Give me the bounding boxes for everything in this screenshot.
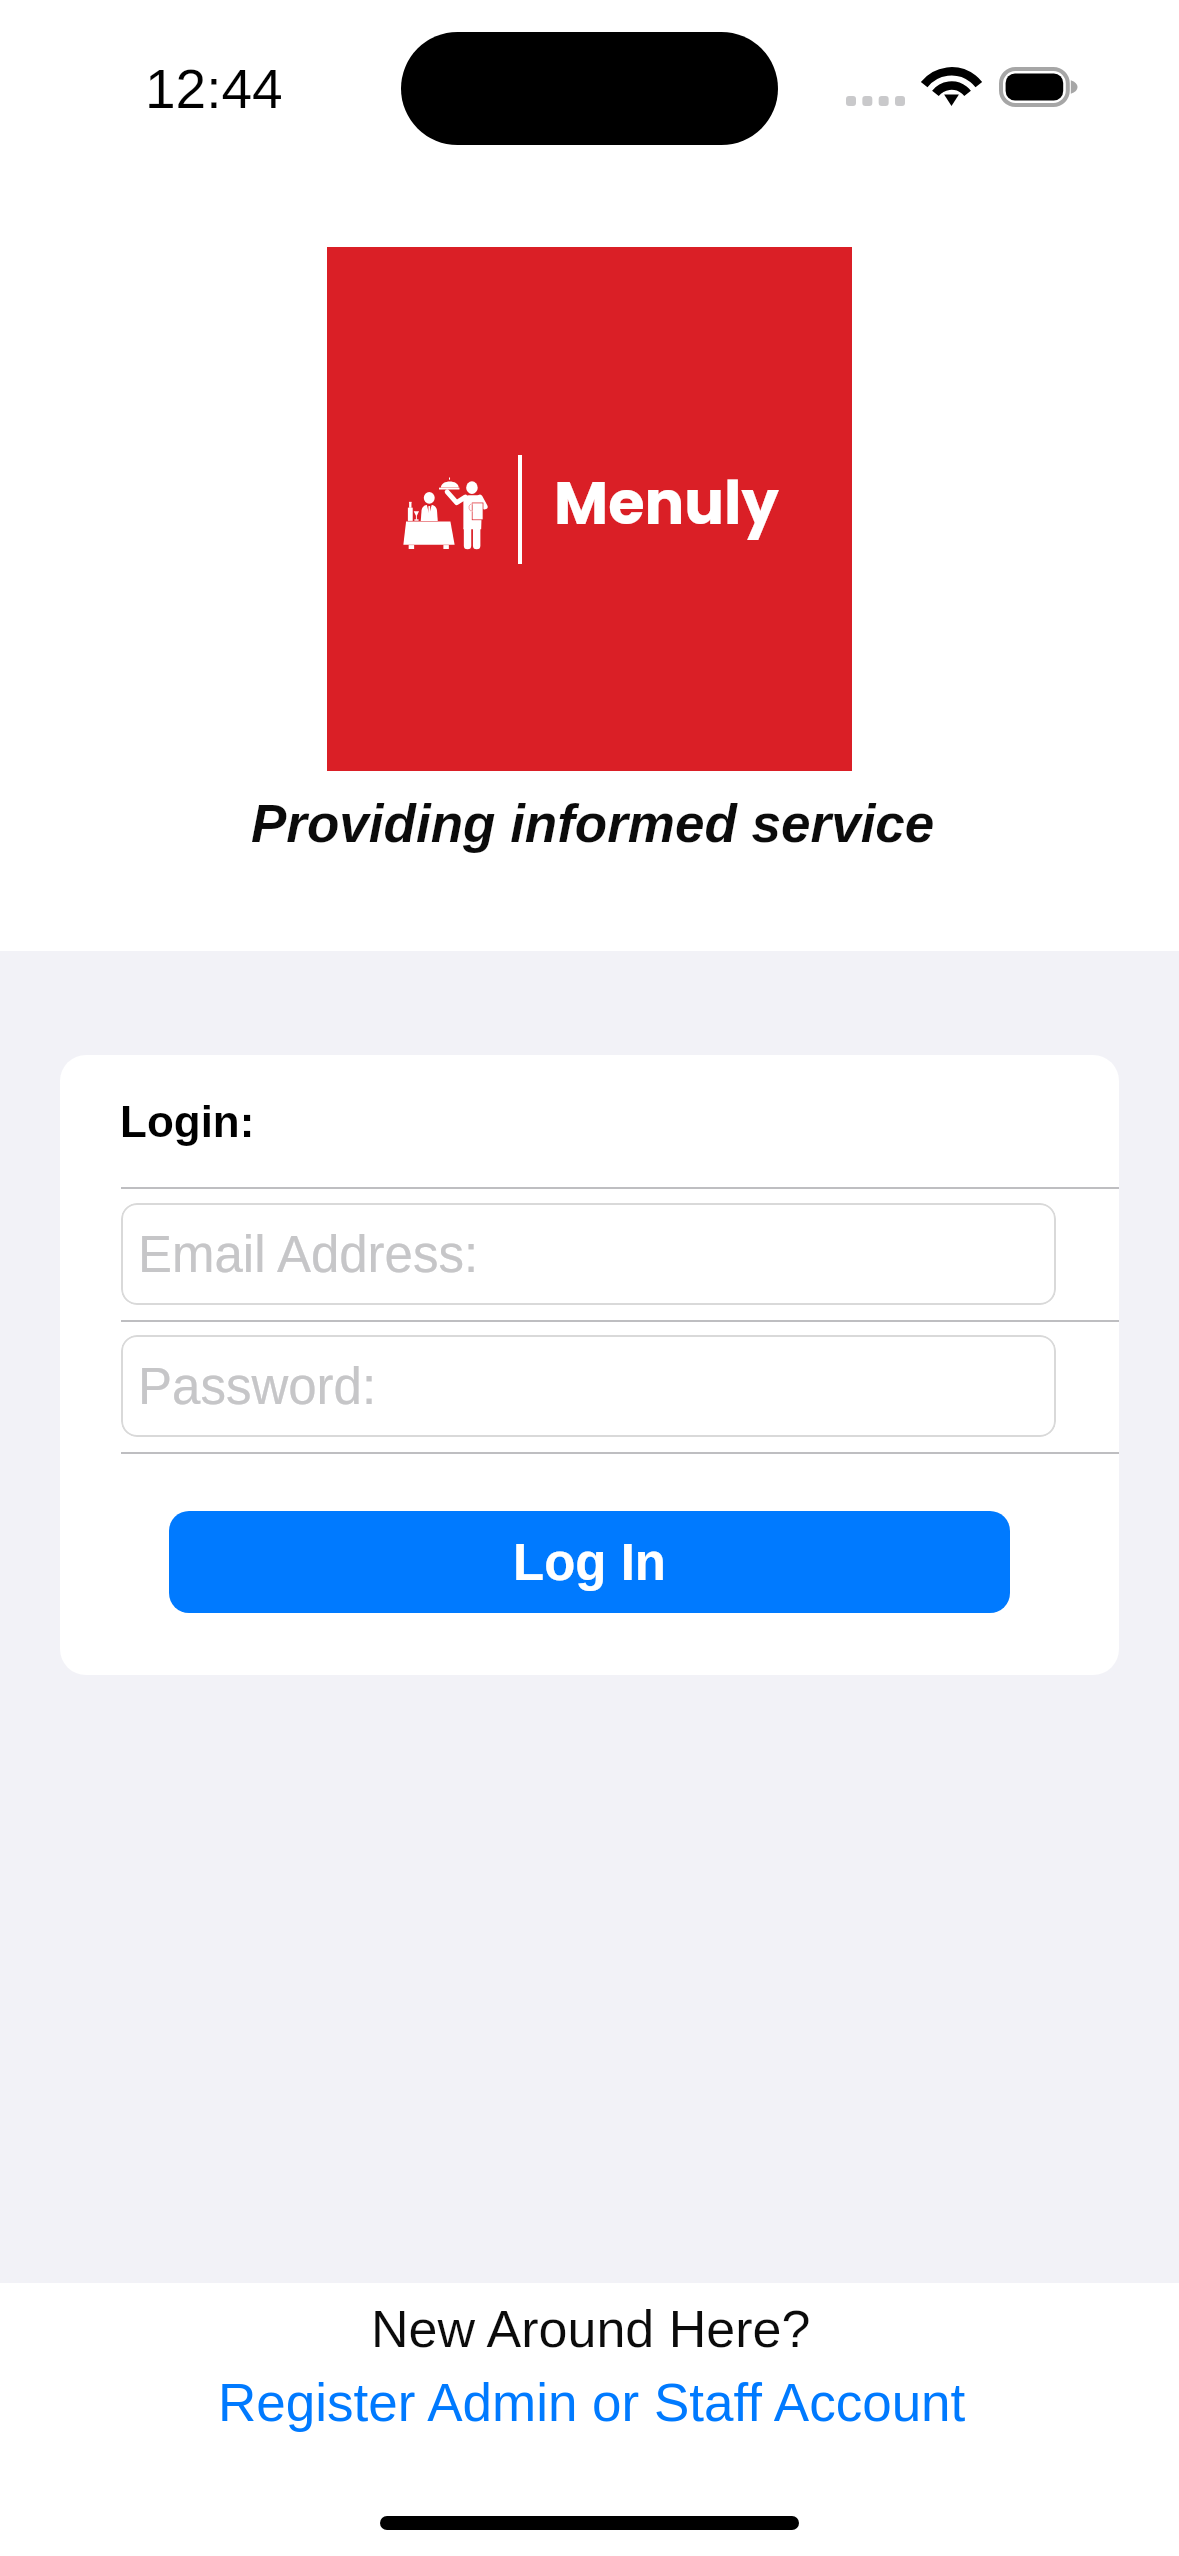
- button[interactable]: Log In: [169, 1511, 1010, 1613]
- button[interactable]: Email Address:: [121, 1203, 1056, 1305]
- staticText: 12:44: [145, 58, 283, 119]
- button[interactable]: Password:: [121, 1335, 1056, 1437]
- button[interactable]: Register Admin or Staff Account: [218, 2373, 966, 2432]
- other: Wi-Fi: [926, 68, 977, 106]
- other: Battery: [999, 67, 1079, 107]
- staticText: New Around Here?: [371, 2300, 811, 2358]
- staticText: Providing informed service: [251, 794, 935, 853]
- staticText: Email Address:: [138, 1226, 479, 1283]
- staticText: Menuly: [554, 462, 779, 545]
- staticText: Password:: [138, 1358, 377, 1415]
- staticText: Log In: [513, 1534, 666, 1591]
- other: Menuly logo: [327, 247, 852, 771]
- staticText: Login:: [120, 1097, 255, 1146]
- other: Cellular signal: [846, 96, 905, 106]
- staticText: Register Admin or Staff Account: [218, 2373, 966, 2432]
